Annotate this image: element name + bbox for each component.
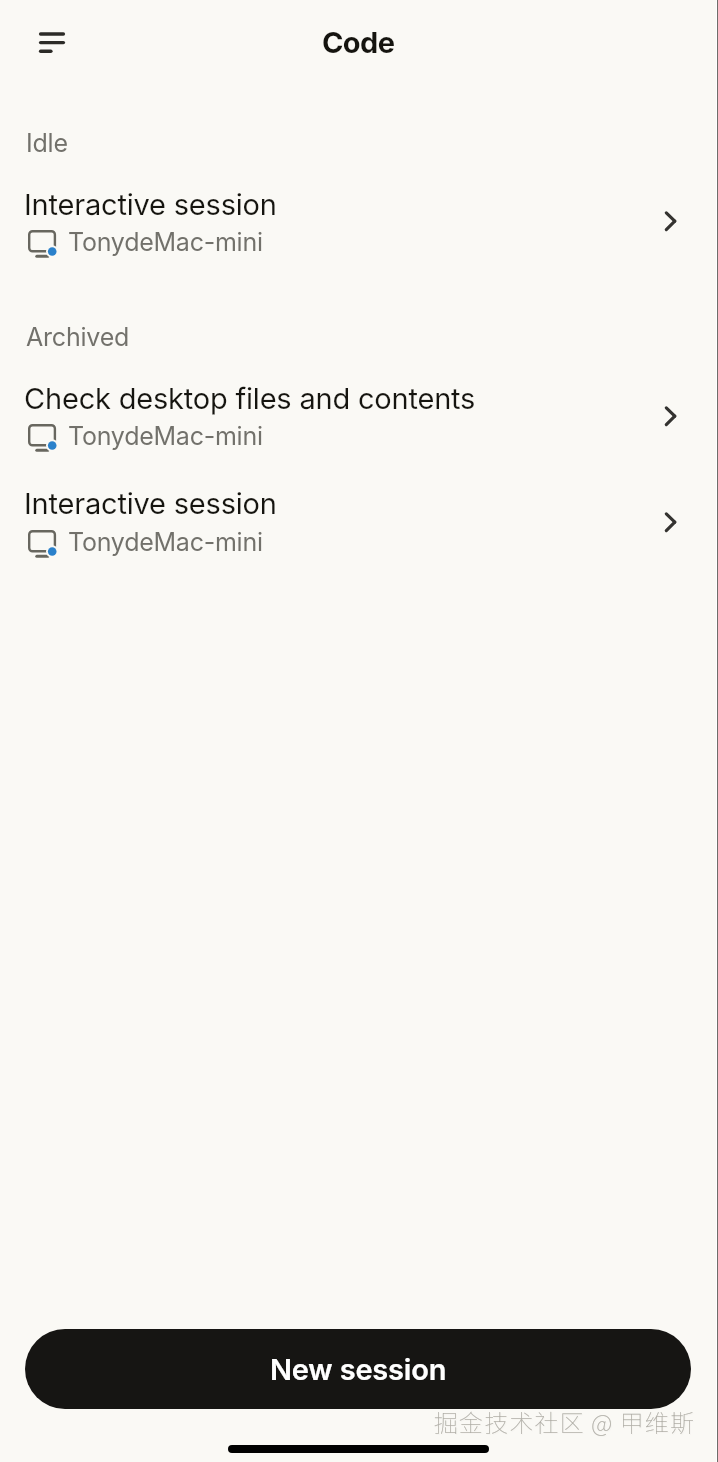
staticText: 掘金技术社区 @ 甲维斯	[435, 1405, 696, 1440]
staticText: Interactive session	[24, 187, 277, 222]
staticText: Code	[322, 25, 395, 60]
staticText: Idle	[26, 128, 68, 158]
button[interactable]: New session	[25, 1329, 691, 1409]
staticText: TonydeMac-mini	[68, 227, 263, 257]
button[interactable]: Open session	[640, 386, 700, 446]
staticText: Archived	[26, 322, 130, 352]
staticText: TonydeMac-mini	[68, 421, 263, 451]
staticText: TonydeMac-mini	[68, 527, 263, 557]
button[interactable]: Open session	[640, 492, 700, 552]
staticText: New session	[270, 1352, 447, 1387]
button[interactable]: Open session	[640, 191, 700, 251]
button[interactable]: Menu	[16, 16, 72, 72]
staticText: 掘金技术社区 @ 甲维斯	[434, 1404, 695, 1439]
staticText: Interactive session	[24, 486, 277, 521]
staticText: Check desktop files and contents	[24, 381, 476, 416]
